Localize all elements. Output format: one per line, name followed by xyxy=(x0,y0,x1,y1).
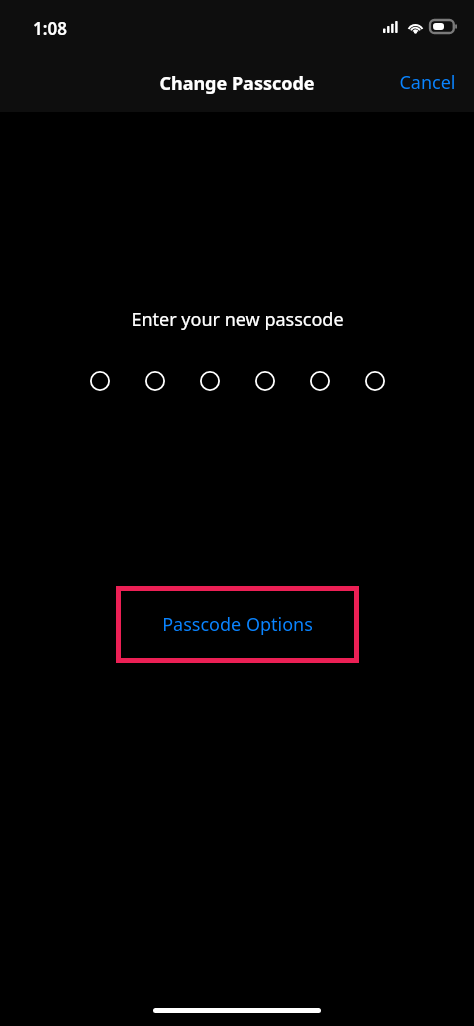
staticText: Cancel xyxy=(399,70,456,95)
staticText: Passcode Options xyxy=(162,612,313,637)
staticText: 1:08 xyxy=(33,17,67,40)
other: Cellular signal xyxy=(383,21,401,33)
button[interactable]: Cancel xyxy=(381,62,474,103)
staticText: Enter your new passcode xyxy=(131,307,344,332)
staticText: Change Passcode xyxy=(159,71,315,96)
other: Wi-Fi xyxy=(407,21,424,33)
button[interactable]: Passcode Options xyxy=(116,586,359,663)
other: Battery xyxy=(430,20,457,33)
